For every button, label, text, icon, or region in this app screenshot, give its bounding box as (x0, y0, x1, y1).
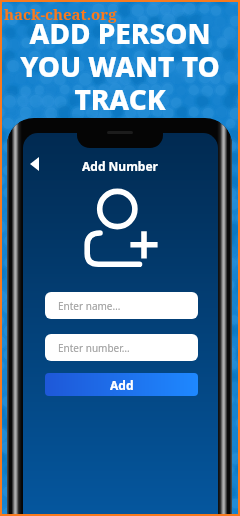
staticText: Add Number (82, 158, 158, 174)
staticText: ADD PERSON (2, 14, 238, 52)
staticText: Enter name… (58, 299, 121, 313)
staticText: Enter number… (58, 341, 130, 355)
staticText: hack-cheat.org (4, 4, 117, 24)
staticText: TRACK (2, 80, 238, 118)
button[interactable]: Enter name… (45, 292, 198, 319)
button[interactable]: Add (45, 373, 198, 396)
button[interactable]: Back (23, 153, 45, 175)
staticText: YOU WANT TO (2, 47, 238, 85)
button[interactable]: Enter number… (45, 334, 198, 361)
staticText: Add (110, 377, 134, 393)
